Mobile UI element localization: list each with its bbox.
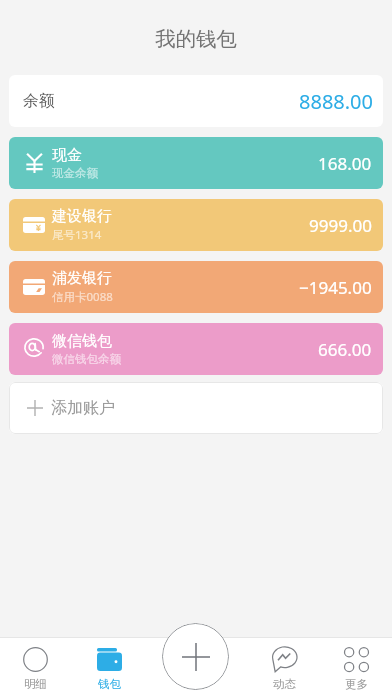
staticText: 我的钱包: [155, 26, 237, 52]
staticText: 添加账户: [51, 398, 115, 418]
button[interactable]: 建设银行: [9, 199, 383, 251]
staticText: 更多: [345, 677, 368, 691]
staticText: 8888.00: [299, 88, 373, 115]
button[interactable]: Add account: [162, 623, 229, 690]
staticText: −1945.00: [299, 276, 372, 299]
button[interactable]: 动态: [260, 646, 308, 691]
staticText: 余额: [23, 91, 55, 111]
staticText: 9999.00: [309, 214, 372, 237]
staticText: 钱包: [98, 677, 121, 691]
button[interactable]: 添加账户: [9, 382, 383, 434]
staticText: 尾号1314: [52, 227, 102, 243]
staticText: 动态: [273, 677, 296, 691]
staticText: 浦发银行: [52, 269, 112, 288]
button[interactable]: 钱包: [85, 646, 133, 691]
staticText: 信用卡0088: [52, 289, 113, 305]
staticText: 明细: [24, 677, 47, 691]
staticText: 168.00: [318, 152, 372, 175]
staticText: 现金: [52, 146, 82, 165]
button[interactable]: 更多: [332, 646, 380, 691]
button[interactable]: 微信钱包: [9, 323, 383, 375]
staticText: 建设银行: [52, 207, 112, 226]
staticText: 微信钱包: [52, 332, 112, 351]
staticText: 现金余额: [52, 166, 98, 180]
button[interactable]: 明细: [11, 646, 59, 691]
button[interactable]: 余额: [9, 75, 383, 127]
button[interactable]: 现金: [9, 137, 383, 189]
staticText: 微信钱包余额: [52, 352, 121, 366]
staticText: 666.00: [318, 338, 372, 361]
button[interactable]: 浦发银行: [9, 261, 383, 313]
